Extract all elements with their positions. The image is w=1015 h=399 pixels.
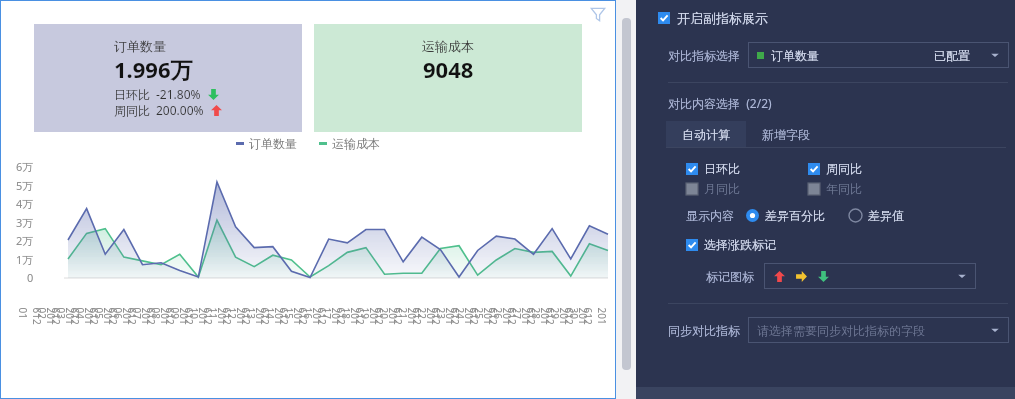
staticText: 月同比 <box>704 181 740 196</box>
staticText: 2万 <box>16 233 34 248</box>
staticText: 运输成本 <box>422 38 474 54</box>
staticText: 20161228 <box>528 307 570 326</box>
staticText: 20161213 <box>243 307 285 326</box>
staticText: 1.996万 <box>114 54 193 84</box>
button[interactable]: 年同比 <box>808 180 862 197</box>
staticText: 对比内容选择 (2/2) <box>668 95 772 111</box>
staticText: 运输成本 <box>332 136 380 151</box>
staticText: 对比指标选择 <box>668 48 740 63</box>
staticText: 20161216 <box>300 307 342 326</box>
staticText: 日环比 <box>704 161 740 176</box>
staticText: 20161209 <box>167 307 209 326</box>
staticText: 新增字段 <box>762 127 810 142</box>
staticText: 20161211 <box>205 307 247 326</box>
staticText: 同步对比指标 <box>668 323 740 338</box>
staticText: 差异值 <box>868 208 904 223</box>
staticText: 20161208 <box>148 307 190 326</box>
staticText: 200.00% <box>156 102 204 118</box>
staticText: 20161226 <box>490 307 532 326</box>
button[interactable]: Filter <box>590 6 606 22</box>
button[interactable]: 自动计算 <box>666 121 746 147</box>
staticText: 已配置 <box>934 48 970 63</box>
staticText: 周同比 <box>114 103 150 118</box>
staticText: 订单数量 <box>114 38 166 54</box>
staticText: 自动计算 <box>682 127 730 142</box>
button[interactable]: 选择涨跌标记 <box>686 236 776 253</box>
staticText: 20161224 <box>452 307 494 326</box>
button[interactable]: 差异值 <box>849 208 904 223</box>
staticText: 开启副指标展示 <box>677 10 768 26</box>
staticText: 周同比 <box>826 161 862 176</box>
staticText: 20161204 <box>72 307 114 326</box>
staticText: 5万 <box>16 178 34 193</box>
staticText: 显示内容 <box>686 208 734 223</box>
button[interactable]: 新增字段 <box>746 121 826 147</box>
staticText: 20161201 <box>15 307 57 326</box>
button[interactable]: 周同比 <box>808 160 862 177</box>
button[interactable]: 运输成本 <box>314 24 582 132</box>
staticText: 订单数量 <box>249 136 297 151</box>
staticText: 20161206 <box>110 307 152 326</box>
staticText: 20161207 <box>129 307 171 326</box>
staticText: 20161218 <box>338 307 380 326</box>
staticText: 20161205 <box>91 307 133 326</box>
button[interactable]: 开启副指标展示 <box>658 10 768 26</box>
button[interactable]: 差异百分比 <box>746 208 825 223</box>
staticText: 20161227 <box>509 307 551 326</box>
staticText: 差异百分比 <box>765 208 825 223</box>
staticText: 20161223 <box>433 307 475 326</box>
staticText: 20161230 <box>566 307 608 326</box>
staticText: 年同比 <box>826 181 862 196</box>
staticText: 20161217 <box>319 307 361 326</box>
staticText: 20161203 <box>53 307 95 326</box>
staticText: 6万 <box>16 159 34 174</box>
staticText: 日环比 <box>114 87 150 102</box>
button[interactable]: 月同比 <box>686 180 740 197</box>
staticText: 20161225 <box>471 307 513 326</box>
button[interactable]: 订单数量 <box>236 136 297 151</box>
staticText: 0 <box>27 270 34 285</box>
staticText: 20161222 <box>414 307 456 326</box>
button[interactable]: 日环比 <box>686 160 740 177</box>
staticText: -21.80% <box>156 86 201 102</box>
staticText: 20161212 <box>224 307 266 326</box>
staticText: 20161229 <box>547 307 589 326</box>
button[interactable]: 订单数量 <box>748 42 1009 68</box>
staticText: 20161210 <box>186 307 228 326</box>
button[interactable]: 运输成本 <box>319 136 380 151</box>
button[interactable] <box>764 263 976 289</box>
staticText: 20161215 <box>281 307 323 326</box>
staticText: 20161214 <box>262 307 304 326</box>
button[interactable]: 请选择需要同步对比指标的字段 <box>748 317 1009 343</box>
staticText: 20161219 <box>357 307 399 326</box>
staticText: 9048 <box>423 54 474 84</box>
staticText: 订单数量 <box>771 48 819 63</box>
button[interactable]: 订单数量 <box>34 24 302 132</box>
staticText: 请选择需要同步对比指标的字段 <box>757 323 925 338</box>
staticText: 1万 <box>16 252 34 267</box>
staticText: 选择涨跌标记 <box>704 237 776 252</box>
staticText: 4万 <box>16 196 34 211</box>
staticText: 20161220 <box>376 307 418 326</box>
staticText: 20161221 <box>395 307 437 326</box>
staticText: 20161202 <box>34 307 76 326</box>
staticText: 标记图标 <box>706 269 754 284</box>
staticText: 3万 <box>16 215 34 230</box>
